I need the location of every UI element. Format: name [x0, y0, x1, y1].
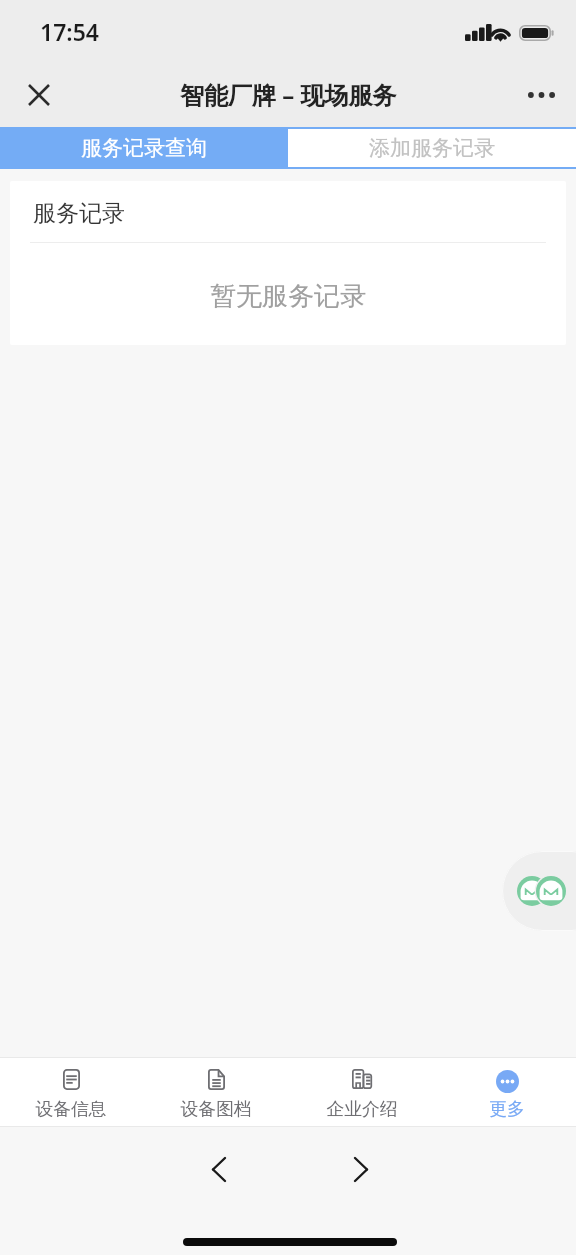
staticText: 设备信息	[35, 1098, 107, 1120]
staticText: 17:54	[40, 16, 99, 47]
staticText: 设备图档	[180, 1098, 252, 1120]
button[interactable]: Customer service	[502, 851, 576, 931]
button[interactable]: Forward	[341, 1149, 381, 1189]
staticText: 服务记录查询	[81, 135, 207, 161]
staticText: 添加服务记录	[369, 135, 495, 161]
button[interactable]: 设备图档	[144, 1058, 288, 1126]
button[interactable]: 添加服务记录	[288, 129, 576, 167]
button[interactable]: 设备信息	[0, 1058, 144, 1126]
button[interactable]: 服务记录查询	[0, 127, 288, 169]
button[interactable]: Back	[199, 1149, 239, 1189]
staticText: 更多	[489, 1098, 525, 1120]
staticText: 服务记录	[33, 199, 125, 228]
staticText: 企业介绍	[326, 1098, 398, 1120]
button[interactable]: 企业介绍	[288, 1058, 432, 1126]
staticText: 智能厂牌 – 现场服务	[180, 78, 397, 111]
button[interactable]: 更多	[432, 1058, 576, 1126]
button[interactable]: Close	[18, 74, 60, 116]
button[interactable]: More options	[520, 74, 562, 116]
staticText: 暂无服务记录	[210, 280, 366, 313]
